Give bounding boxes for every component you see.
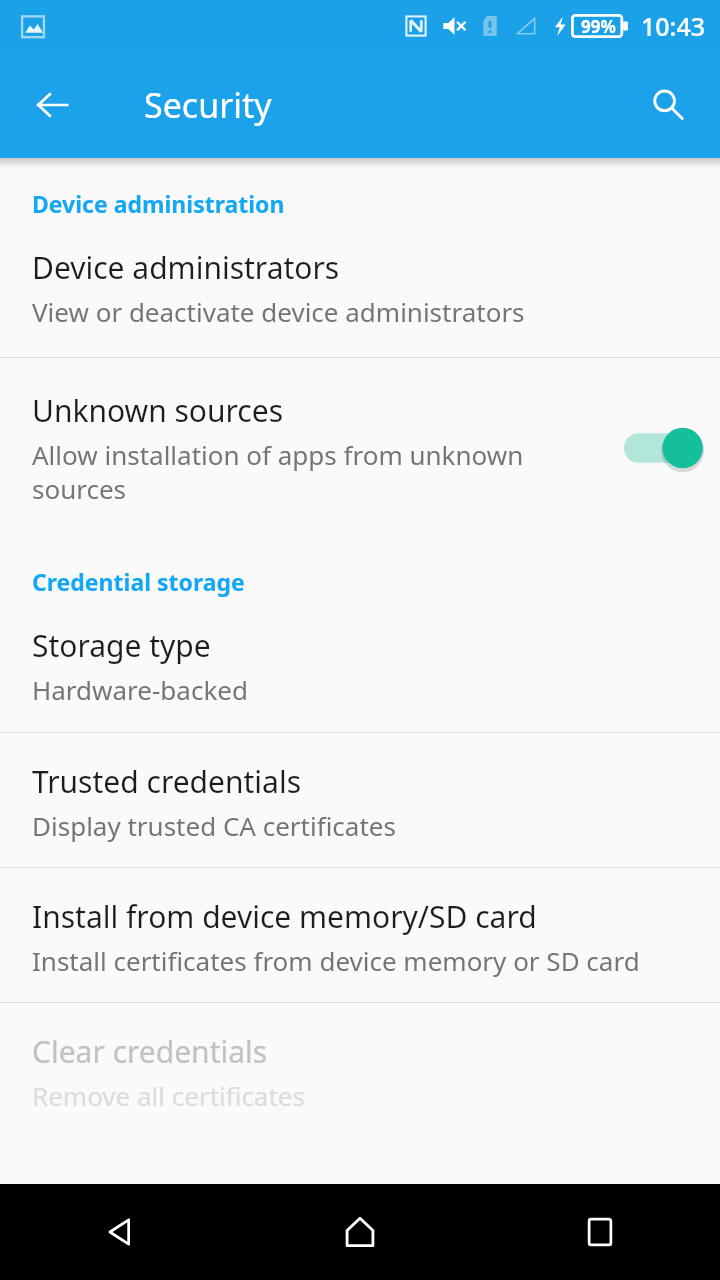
staticText: Install from device memory/SD card [32,896,537,937]
button[interactable]: Recent apps [480,1184,720,1280]
button[interactable]: Back [20,73,84,137]
button[interactable]: Home [240,1184,480,1280]
staticText: 99% [581,15,616,38]
staticText: Credential storage [32,566,245,597]
staticText: Display trusted CA certificates [32,808,396,843]
button[interactable]: Search [638,75,698,135]
button[interactable]: Unknown sources toggle, on [624,425,696,471]
staticText: Clear credentials [32,1031,268,1072]
staticText: 10:43 [641,9,706,43]
button[interactable]: Back [0,1184,240,1280]
staticText: Install certificates from device memory … [32,943,640,978]
staticText: Device administrators [32,247,340,288]
staticText: Hardware-backed [32,672,248,707]
staticText: Trusted credentials [32,761,302,802]
staticText: Remove all certificates [32,1078,305,1113]
staticText: Storage type [32,625,211,666]
button[interactable]: Unknown sources [0,358,720,526]
staticText: Unknown sources [32,390,284,431]
button: Clear credentials [0,1031,720,1113]
button[interactable]: Storage type [0,625,720,707]
staticText: Allow installation of apps from unknown … [32,437,524,506]
staticText: Security [144,82,272,128]
button[interactable]: Install from device memory/SD card [0,896,720,978]
button[interactable]: Device administrators [0,247,720,329]
staticText: Device administration [32,188,285,219]
button[interactable]: Trusted credentials [0,761,720,843]
staticText: View or deactivate device administrators [32,294,525,329]
